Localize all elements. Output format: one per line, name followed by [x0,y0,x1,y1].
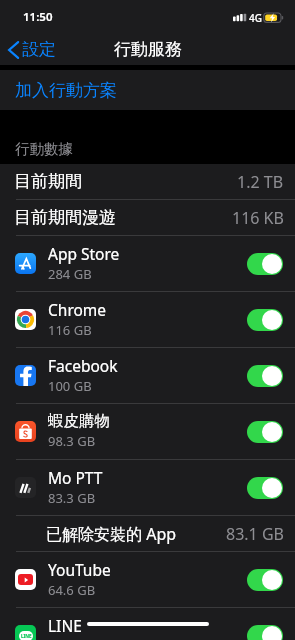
staticText: Chrome [48,299,107,320]
staticText: Facebook [48,355,118,376]
staticText: 設定 [22,39,56,60]
staticText: 加入行動方案 [15,80,117,101]
staticText: 11:50 [23,9,53,25]
button[interactable]: 設定 [0,39,64,60]
button[interactable]: 蝦皮購物 [0,404,295,459]
staticText: 4G [249,11,262,25]
button[interactable]: Toggle cellular data [247,253,283,275]
button[interactable]: 已解除安裝的 App [0,516,295,551]
button[interactable]: 目前期間漫遊 [0,200,295,235]
staticText: 284 GB [48,265,92,283]
button[interactable]: Facebook [0,348,295,403]
button[interactable]: Toggle cellular data [247,477,283,499]
button[interactable]: App Store [0,236,295,291]
staticText: 行動數據 [15,140,73,158]
staticText: 83.3 GB [48,489,96,507]
staticText: Mo PTT [48,467,103,488]
button[interactable]: Toggle cellular data [247,365,283,387]
staticText: 目前期間 [14,171,82,192]
staticText: 行動服務 [114,39,182,60]
button[interactable]: 目前期間 [0,164,295,199]
staticText: 64.6 GB [48,581,96,599]
button[interactable]: 加入行動方案 [0,70,295,110]
button[interactable]: Toggle cellular data [247,421,283,443]
staticText: 目前期間漫遊 [14,207,116,228]
button[interactable]: Toggle cellular data [247,309,283,331]
staticText: 98.3 GB [48,432,96,450]
staticText: 已解除安裝的 App [46,523,177,545]
staticText: 116 GB [48,321,92,339]
button[interactable]: Mo PTT [0,460,295,515]
staticText: 100 GB [48,377,92,395]
button[interactable]: Toggle cellular data [247,569,283,591]
staticText: 1.2 TB [237,171,284,193]
staticText: App Store [48,243,120,264]
staticText: 蝦皮購物 [48,411,110,431]
staticText: YouTube [48,559,111,580]
staticText: 83.1 GB [226,523,284,545]
button[interactable]: Chrome [0,292,295,347]
staticText: LINE [21,633,32,639]
staticText: 116 KB [232,207,284,229]
staticText: LINE [48,615,82,636]
button[interactable]: YouTube [0,552,295,607]
button[interactable]: LINE [0,608,295,640]
button[interactable]: Toggle cellular data [247,625,283,640]
